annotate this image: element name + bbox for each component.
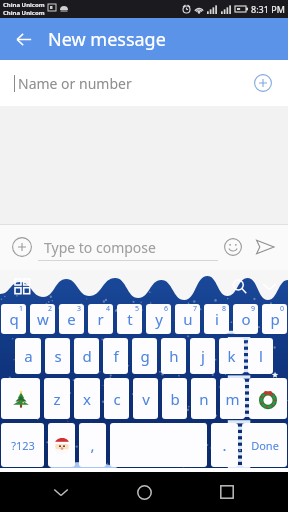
staticText: 8:31 PM [251,3,285,15]
staticText: Done [251,438,279,453]
button[interactable]: Home [122,472,166,512]
staticText: x [83,389,91,409]
button[interactable]: c [104,378,129,419]
staticText: j [201,346,205,366]
staticText: 5 [135,304,140,314]
button[interactable]: Add attachment [6,231,38,263]
staticText: s [54,346,62,366]
button[interactable]: Type to compose [38,224,218,270]
button[interactable]: Add recipient [248,68,278,98]
button[interactable]: Hide keyboard [254,271,284,301]
staticText: , [90,435,95,455]
button[interactable]: Send [248,230,282,264]
button[interactable]: o [233,304,258,334]
staticText: g [140,346,150,366]
button[interactable]: z [44,378,70,419]
button[interactable]: y [146,304,171,334]
button[interactable]: w [30,304,55,334]
button[interactable]: v [133,378,158,419]
staticText: 9 [251,304,256,314]
staticText: t [127,309,133,329]
button[interactable]: m [220,378,245,419]
staticText: z [53,389,61,409]
button[interactable]: s [45,338,70,374]
staticText: l [259,346,263,366]
button[interactable]: . [211,423,238,467]
staticText: w [37,309,49,329]
button[interactable]: i [204,304,229,334]
button[interactable]: a [15,338,41,374]
staticText: q [9,309,19,329]
button[interactable]: r [88,304,113,334]
button[interactable]: e [59,304,84,334]
staticText: 8 [222,304,227,314]
button[interactable]: Shift [1,378,40,419]
button[interactable]: ?123 [1,423,44,467]
button[interactable]: Back [6,22,40,56]
button[interactable]: Emoji [218,232,248,262]
staticText: c [113,389,121,409]
button[interactable]: , [79,423,106,467]
staticText: a [24,346,33,366]
button[interactable]: t [117,304,142,334]
staticText: China Unicom [3,9,45,17]
button[interactable]: Recent apps [205,472,249,512]
button[interactable]: Done [242,423,287,467]
staticText: e [67,309,76,329]
staticText: m [225,389,240,409]
staticText: b [170,389,180,409]
button[interactable]: x [74,378,100,419]
button[interactable]: l [248,338,273,374]
staticText: f [113,346,119,366]
staticText: d [82,346,92,366]
button[interactable]: f [103,338,128,374]
button[interactable]: Delete [249,378,287,419]
button[interactable]: d [74,338,99,374]
staticText: o [241,309,251,329]
staticText: 0 [280,304,285,314]
staticText: New message [48,27,166,52]
staticText: r [97,309,104,329]
staticText: 1 [19,304,24,314]
staticText: China Unicom [3,1,45,9]
staticText: h [169,346,179,366]
button[interactable]: Search [224,271,254,301]
button[interactable]: p [262,304,287,334]
staticText: i [215,309,219,329]
staticText: Name or number [18,74,132,93]
button[interactable]: n [191,378,216,419]
staticText: v [142,389,150,409]
staticText: p [270,309,280,329]
staticText: n [199,389,209,409]
button[interactable]: j [190,338,215,374]
button[interactable]: q [1,304,26,334]
button[interactable]: Keyboard menu [9,273,35,299]
staticText: ?123 [11,438,35,453]
button[interactable]: k [219,338,244,374]
staticText: Type to compose [44,238,156,257]
staticText: y [155,309,163,329]
staticText: u [183,309,193,329]
staticText: 4 [106,304,111,314]
staticText: . [222,435,227,455]
staticText: 6 [164,304,169,314]
button[interactable]: g [132,338,157,374]
staticText: k [227,346,236,366]
button[interactable]: Emoji [48,423,75,467]
button[interactable]: Back [39,472,83,512]
staticText: 7 [193,304,198,314]
button[interactable]: u [175,304,200,334]
button[interactable]: b [162,378,187,419]
staticText: 2 [48,304,53,314]
button[interactable]: h [161,338,186,374]
staticText: 3 [77,304,82,314]
button[interactable] [110,423,207,467]
